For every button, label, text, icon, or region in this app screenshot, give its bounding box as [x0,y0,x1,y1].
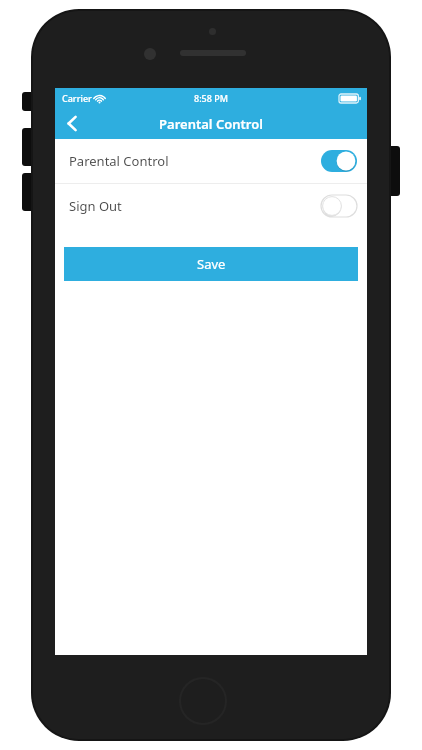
button[interactable]: Back [55,108,89,139]
staticText: Sign Out [69,197,122,215]
staticText: Parental Control [69,152,169,170]
button[interactable]: Parental Control [55,139,367,183]
staticText: Parental Control [159,115,263,133]
staticText: 8:58 PM [194,92,228,104]
staticText: Carrier [62,92,92,104]
staticText: Save [197,255,226,273]
button[interactable]: Sign Out [55,184,367,228]
button[interactable]: Save [64,247,358,281]
